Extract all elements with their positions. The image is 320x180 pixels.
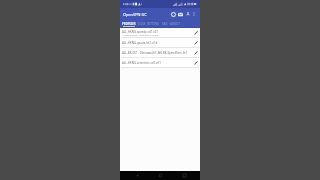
button[interactable]: ALL-BK-001 - Okinawa-lh1-AN-HK-SpeedServ…: [120, 48, 200, 58]
button[interactable]: LOGS: [136, 20, 147, 28]
button[interactable]: SETTINGS: [147, 20, 160, 28]
staticText: SETTINGS: [147, 22, 160, 26]
button[interactable]: ALL-HKNG-speedy-sd1-v01: [120, 28, 200, 38]
staticText: ALL-BK-001 - Okinawa-lh1-AN-HK-SpeedServ…: [122, 51, 188, 55]
staticText: ALL-HKNG-terserver-sd1-v01: [122, 61, 161, 65]
staticText: ALL-HKNG-gsuite-hk1-n1d: [122, 41, 158, 45]
button[interactable]: PROFILES: [122, 20, 136, 28]
button[interactable]: ABOUT: [169, 20, 180, 28]
button[interactable]: Edit profile: [192, 28, 199, 38]
button[interactable]: ALL-HKNG-terserver-sd1-v01: [120, 58, 200, 68]
button[interactable]: Search: [170, 8, 177, 20]
staticText: FAQ: [162, 22, 168, 26]
staticText: LOGS: [138, 22, 146, 26]
staticText: 10 connections dedicated 24 hours: [122, 34, 160, 37]
staticText: PROFILES: [122, 22, 136, 26]
button[interactable]: Add profile: [184, 8, 191, 20]
button[interactable]: FAQ: [160, 20, 169, 28]
staticText: ALL-HKNG-speedy-sd1-v01: [122, 30, 159, 34]
button[interactable]: Recent apps: [177, 171, 191, 180]
button[interactable]: ALL-HKNG-gsuite-hk1-n1d: [120, 38, 200, 48]
button[interactable]: Home: [153, 171, 167, 180]
staticText: OpenVPN GC: [123, 12, 147, 17]
button[interactable]: Edit profile: [192, 38, 199, 48]
button[interactable]: Import profile: [177, 8, 184, 20]
button[interactable]: Edit profile: [192, 58, 199, 68]
staticText: ABOUT: [170, 22, 180, 26]
button[interactable]: More options: [191, 8, 197, 20]
button[interactable]: Back: [130, 171, 144, 180]
button[interactable]: Edit profile: [192, 48, 199, 58]
